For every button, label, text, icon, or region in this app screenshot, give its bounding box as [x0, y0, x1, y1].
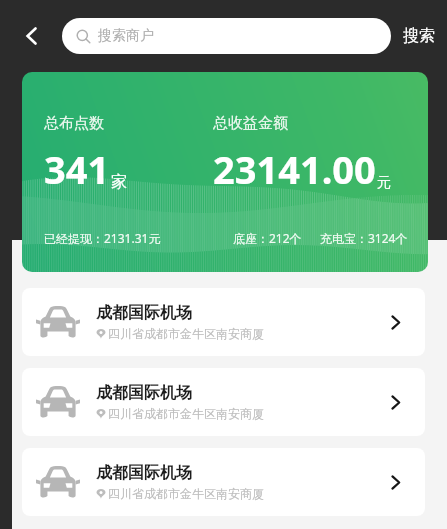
staticText: 充电宝：3124个 — [320, 230, 408, 246]
button[interactable]: 搜索 — [401, 20, 437, 52]
staticText: 四川省成都市金牛区南安商厦 — [108, 486, 264, 501]
staticText: 总布点数 — [44, 114, 104, 133]
button[interactable]: Back — [10, 14, 54, 58]
button[interactable]: 成都国际机场 — [22, 288, 425, 356]
staticText: 23141.00 — [213, 143, 376, 195]
staticText: 搜索 — [403, 26, 435, 46]
staticText: 总收益金额 — [213, 114, 288, 133]
staticText: 搜索商户 — [98, 27, 154, 45]
staticText: 成都国际机场 — [96, 383, 192, 403]
staticText: 已经提现：2131.31元 — [44, 230, 161, 246]
staticText: 341 — [44, 143, 110, 195]
button[interactable]: 成都国际机场 — [22, 368, 425, 436]
staticText: 四川省成都市金牛区南安商厦 — [108, 326, 264, 341]
staticText: 成都国际机场 — [96, 463, 192, 483]
staticText: 家 — [111, 172, 127, 192]
button[interactable]: 搜索商户 — [62, 18, 391, 54]
button[interactable]: 成都国际机场 — [22, 448, 425, 516]
staticText: 元 — [377, 174, 391, 192]
staticText: 四川省成都市金牛区南安商厦 — [108, 406, 264, 421]
staticText: 底座：212个 — [233, 230, 302, 246]
staticText: 成都国际机场 — [96, 303, 192, 323]
button[interactable]: 总布点数 — [22, 72, 428, 272]
